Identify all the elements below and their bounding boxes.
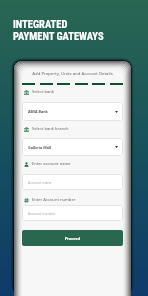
staticText: Enter Account number [32,197,76,203]
staticText: INTEGRATED [13,18,68,30]
staticText: Account number [28,211,56,216]
staticText: Select bank branch [32,126,69,132]
staticText: ABSA Bank [28,109,48,114]
other: Select bank [24,90,29,95]
staticText: Select bank [32,89,54,95]
button[interactable]: Account name [22,174,123,190]
staticText: Galleria Mall [28,145,52,150]
staticText: PAYMENT GATEWAYS [13,30,104,42]
staticText: Account name [28,180,52,185]
other: Select bank branch [24,127,29,132]
staticText: Enter account name [32,161,71,167]
button[interactable]: Galleria Mall [22,138,123,156]
button[interactable]: Proceed [22,230,123,246]
other: Enter account name [24,162,29,167]
staticText: Proceed [65,236,81,241]
staticText: Add Property, Units and Account Details [14,70,131,76]
button[interactable]: ABSA Bank [22,102,123,121]
button[interactable]: Account number [22,205,123,221]
other: Enter Account number [24,198,29,203]
